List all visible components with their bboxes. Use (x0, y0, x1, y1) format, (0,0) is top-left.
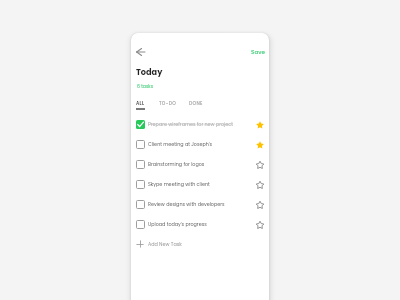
button[interactable]: Back (132, 44, 148, 60)
staticText: Add New Task (148, 241, 182, 248)
button[interactable]: Save (248, 46, 268, 58)
button[interactable]: ALL (136, 100, 145, 106)
button[interactable]: Star (254, 219, 265, 230)
staticText: 6 tasks (137, 83, 154, 89)
staticText: Skype meeting with client (148, 181, 210, 188)
staticText: Today (136, 66, 163, 77)
button[interactable]: Skype meeting with client (131, 174, 269, 194)
staticText: TO-DO (159, 100, 177, 106)
button[interactable]: Review designs with developers (131, 194, 269, 214)
staticText: Prepare wireframes for new project (148, 121, 233, 128)
button[interactable]: Add New Task (131, 234, 269, 254)
button[interactable]: Star (254, 139, 265, 150)
staticText: ALL (136, 100, 145, 106)
staticText: Client meeting at Joseph's (148, 141, 213, 148)
button[interactable]: Brainstorming for logos (131, 154, 269, 174)
button[interactable]: Prepare wireframes for new project (131, 114, 269, 134)
staticText: Upload today's progress (148, 221, 207, 228)
staticText: Save (251, 48, 265, 56)
button[interactable]: Star (254, 119, 265, 130)
button[interactable]: Upload today's progress (131, 214, 269, 234)
button[interactable]: Star (254, 159, 265, 170)
button[interactable]: Client meeting at Joseph's (131, 134, 269, 154)
staticText: DONE (189, 100, 203, 106)
button[interactable]: TO-DO (159, 100, 177, 106)
staticText: Review designs with developers (148, 201, 225, 208)
button[interactable]: Star (254, 179, 265, 190)
button[interactable]: Star (254, 199, 265, 210)
staticText: Brainstorming for logos (148, 161, 205, 168)
button[interactable]: DONE (189, 100, 203, 106)
